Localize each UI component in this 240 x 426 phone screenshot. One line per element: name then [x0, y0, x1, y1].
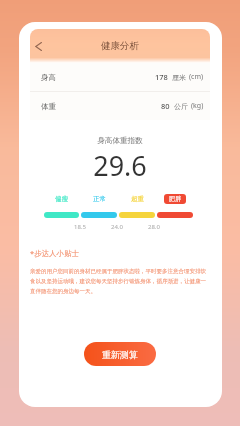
staticText: 体重: [41, 102, 56, 111]
staticText: *步达人小贴士: [30, 248, 80, 258]
staticText: 24.0: [111, 223, 123, 231]
staticText: 厘米: [172, 73, 186, 82]
staticText: 肥胖: [169, 195, 181, 203]
button[interactable]: 体重: [30, 92, 210, 120]
staticText: 超重: [131, 195, 144, 203]
staticText: 身高体重指数: [30, 136, 210, 145]
staticText: 偏瘦: [55, 195, 68, 203]
button[interactable]: 身高: [30, 63, 210, 91]
staticText: 28.0: [148, 223, 160, 231]
staticText: 正常: [93, 195, 106, 203]
staticText: 178: [155, 72, 168, 82]
staticText: 重新测算: [102, 349, 138, 360]
staticText: 亲爱的用户您目前的身材已经属于肥胖状态啦，平时要多注意合理安排饮食以及坚持运动哦…: [30, 268, 210, 295]
staticText: 健康分析: [101, 40, 139, 52]
staticText: (cm): [189, 72, 204, 82]
staticText: (kg): [191, 101, 204, 111]
button[interactable]: 重新测算: [84, 342, 156, 366]
button[interactable]: Back: [30, 38, 46, 54]
staticText: 公斤: [174, 102, 188, 111]
staticText: 29.6: [30, 147, 210, 184]
staticText: 18.5: [74, 223, 86, 231]
staticText: 80: [161, 101, 170, 111]
staticText: 身高: [41, 73, 56, 82]
